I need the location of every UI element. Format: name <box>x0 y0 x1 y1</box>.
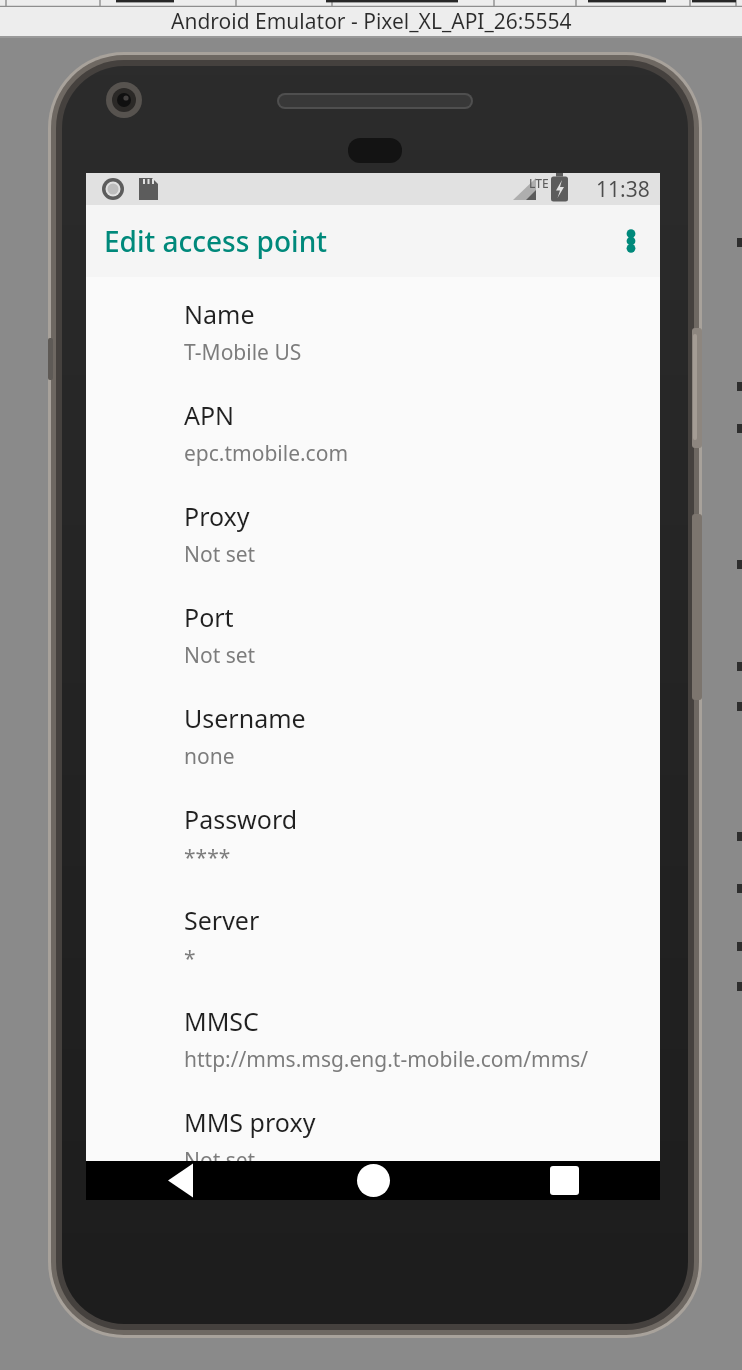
staticText: Not set <box>184 1146 256 1161</box>
button[interactable]: Home <box>278 1161 469 1200</box>
staticText: Username <box>184 701 306 735</box>
button[interactable]: Server <box>86 903 660 1004</box>
staticText: Not set <box>184 540 256 569</box>
staticText: Edit access point <box>104 222 327 260</box>
staticText: none <box>184 742 235 771</box>
staticText: epc.tmobile.com <box>184 439 349 468</box>
staticText: LTE <box>529 175 549 191</box>
staticText: APN <box>184 398 235 432</box>
button[interactable]: MMSC <box>86 1004 660 1105</box>
button[interactable]: Name <box>86 297 660 398</box>
button[interactable]: Proxy <box>86 499 660 600</box>
staticText: http://mms.msg.eng.t-mobile.com/mms/wape… <box>184 1045 640 1074</box>
staticText: Proxy <box>184 499 250 533</box>
staticText: Android Emulator - Pixel_XL_API_26:5554 <box>171 7 572 36</box>
staticText: Port <box>184 600 234 634</box>
staticText: 11:38 <box>596 175 650 204</box>
button[interactable]: More options <box>602 212 660 270</box>
button[interactable]: Recent apps <box>469 1161 660 1200</box>
button[interactable]: Password <box>86 802 660 903</box>
button[interactable]: Username <box>86 701 660 802</box>
staticText: MMSC <box>184 1004 259 1038</box>
staticText: Server <box>184 903 260 937</box>
staticText: Password <box>184 802 298 836</box>
staticText: * <box>184 944 196 973</box>
staticText: **** <box>184 843 231 872</box>
staticText: Name <box>184 297 255 331</box>
staticText: MMS proxy <box>184 1105 316 1139</box>
button[interactable]: Back <box>86 1161 278 1200</box>
button[interactable]: MMS proxy <box>86 1105 660 1161</box>
button[interactable]: Port <box>86 600 660 701</box>
staticText: T-Mobile US <box>184 338 302 367</box>
staticText: Not set <box>184 641 256 670</box>
button[interactable]: APN <box>86 398 660 499</box>
